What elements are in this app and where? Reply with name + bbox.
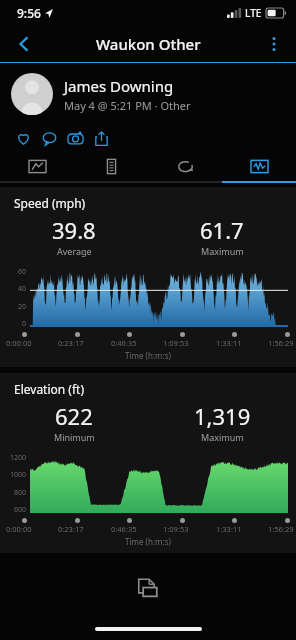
staticText: 40 — [18, 284, 27, 294]
staticText: Minimum — [54, 431, 95, 443]
staticText: 39.8 — [52, 215, 96, 245]
staticText: 60 — [18, 267, 27, 277]
staticText: 600 — [14, 505, 27, 515]
button[interactable]: Share — [88, 125, 114, 151]
staticText: May 4 @ 5:21 PM · Other — [64, 98, 191, 113]
staticText: 1000 — [10, 470, 27, 480]
staticText: 1,319 — [194, 401, 251, 431]
staticText: 1:33:11 — [216, 338, 242, 348]
staticText: 9:56 — [17, 5, 41, 21]
staticText: 0:46:35 — [111, 524, 137, 534]
button[interactable]: Like — [10, 125, 36, 151]
staticText: Maximum — [201, 245, 244, 257]
button[interactable]: Comment — [36, 125, 62, 151]
button[interactable]: Copy — [131, 571, 165, 605]
button[interactable]: Laps — [148, 151, 222, 181]
staticText: Elevation (ft) — [14, 381, 85, 397]
button[interactable]: Photo — [62, 125, 88, 151]
staticText: 0:00:00 — [6, 338, 32, 348]
staticText: 0:23:17 — [58, 524, 84, 534]
staticText: 1:09:53 — [163, 338, 189, 348]
button[interactable]: Graphs — [222, 151, 296, 181]
staticText: 0 — [22, 319, 27, 329]
staticText: 1:56:29 — [268, 524, 294, 534]
staticText: 800 — [14, 488, 27, 498]
button[interactable]: James Downing — [0, 63, 296, 125]
staticText: Average — [57, 245, 92, 257]
staticText: James Downing — [64, 76, 174, 96]
staticText: 1200 — [10, 453, 27, 463]
staticText: Maximum — [201, 431, 244, 443]
staticText: 0:46:35 — [111, 338, 137, 348]
button[interactable]: Map — [0, 151, 74, 181]
staticText: 622 — [55, 401, 93, 431]
staticText: Time (h:m:s) — [0, 350, 296, 361]
staticText: 0:00:00 — [6, 524, 32, 534]
staticText: LTE — [245, 6, 262, 20]
button[interactable]: Back — [6, 26, 42, 62]
button[interactable]: More options — [256, 26, 292, 62]
staticText: Waukon Other — [96, 34, 201, 54]
staticText: 1:09:53 — [163, 524, 189, 534]
staticText: 0:23:17 — [58, 338, 84, 348]
button[interactable]: Details — [74, 151, 148, 181]
staticText: 61.7 — [200, 215, 244, 245]
staticText: 20 — [18, 302, 27, 312]
staticText: Time (h:m:s) — [0, 536, 296, 547]
staticText: 1:33:11 — [216, 524, 242, 534]
staticText: Speed (mph) — [14, 195, 86, 211]
staticText: 1:56:29 — [268, 338, 294, 348]
